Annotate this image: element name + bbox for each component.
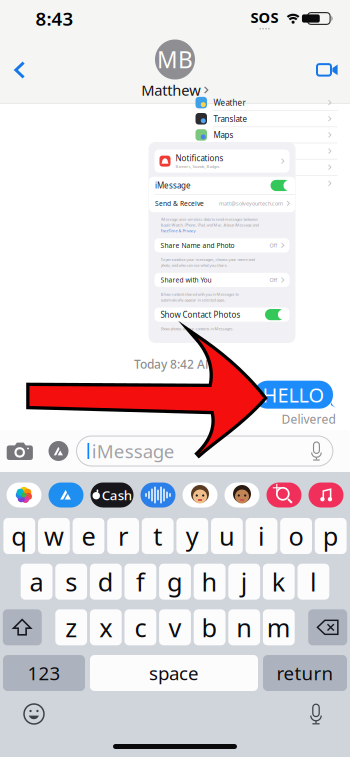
staticText: 123 [27,661,60,685]
button[interactable]: d [90,564,122,600]
button[interactable]: e [73,518,104,554]
staticText: To personalize your messages, choose you… [160,257,254,262]
staticText: iMessage [92,439,175,463]
button[interactable]: u [211,518,243,554]
staticText: return [276,661,333,685]
staticText: j [241,565,248,598]
button[interactable]: m [263,609,295,645]
button[interactable]: w [38,518,70,554]
button[interactable]: space [90,655,258,691]
staticText: g [167,565,183,598]
staticText: matt@solveyourtech.com [219,200,283,207]
button[interactable]: p [315,518,347,554]
button[interactable]: b [194,609,225,645]
staticText: s [65,565,77,598]
button[interactable]: t [142,518,174,554]
button[interactable]: FaceTime video call [304,37,350,103]
staticText: r [118,519,128,553]
button[interactable]: i [246,518,277,554]
staticText: Today 8:42 AM [134,356,216,372]
staticText: iMessage uses wireless data to send mess… [160,216,257,222]
button[interactable]: return [263,655,347,691]
button[interactable]: Camera [0,429,40,473]
button[interactable]: Numbers [3,655,85,691]
button[interactable]: a [21,564,52,600]
staticText: Share Name and Photo [160,241,234,250]
button[interactable]: f [124,564,156,600]
staticText: q [11,519,27,553]
staticText: automatically appear in selected apps. [160,297,225,302]
staticText: k [272,565,286,598]
staticText: x [99,610,112,644]
staticText: Off [269,242,277,249]
staticText: Show Contact Photos [160,309,240,320]
staticText: Maps [213,130,233,140]
button[interactable]: Apple Cash [90,482,133,507]
button[interactable]: c [124,609,156,645]
button[interactable]: o [280,518,312,554]
button[interactable]: Memoji [182,482,217,507]
button[interactable]: Stickers [266,482,301,507]
staticText: FaceTime & Privacy [160,228,195,233]
staticText: Send & Receive [155,199,204,208]
staticText: Translate [213,113,247,124]
staticText: o [289,519,304,553]
button[interactable]: y [176,518,208,554]
button[interactable]: iMessage apps [40,429,76,473]
button[interactable]: iMessage [76,436,350,466]
button[interactable]: n [228,609,260,645]
staticText: MB [157,44,193,74]
button[interactable]: s [55,564,87,600]
button[interactable]: z [55,609,87,645]
button[interactable]: Back [0,37,39,103]
button[interactable]: Memoji 2 [224,482,259,507]
button[interactable]: MB [141,37,209,103]
button[interactable]: v [159,609,191,645]
staticText: Shared with You [160,276,211,284]
staticText: e [81,519,95,553]
button[interactable]: h [194,564,225,600]
staticText: v [168,610,181,644]
staticText: c [134,610,146,644]
staticText: Weather [213,97,245,108]
staticText: Delivered [281,411,335,427]
button[interactable]: l [297,564,329,600]
staticText: SOS [251,7,279,27]
staticText: iMessage [155,180,191,191]
staticText: Notifications [175,153,223,164]
button[interactable]: q [3,518,35,554]
button[interactable]: Audio message [140,482,175,507]
staticText: 8:43 [35,6,73,31]
button[interactable]: Photos [6,482,41,507]
staticText: Off [269,276,277,283]
staticText: n [236,610,252,644]
staticText: f [136,565,145,598]
staticText: Cash [102,486,132,504]
staticText: photo, and who can see what you share. [160,263,227,268]
staticText: w [44,519,64,553]
staticText: h [202,565,218,598]
staticText: y [186,519,199,553]
button[interactable]: k [263,564,295,600]
staticText: d [98,565,114,598]
button[interactable]: Music [308,482,343,507]
staticText: t [153,519,162,553]
staticText: u [219,519,235,553]
button[interactable]: x [90,609,122,645]
staticText: m [267,610,291,644]
staticText: b [202,610,218,644]
button[interactable]: r [107,518,139,554]
staticText: l [310,565,317,598]
staticText: Allow content shared with you in Message… [160,291,238,297]
button[interactable]: Shift [3,609,42,645]
staticText: p [323,519,339,553]
button[interactable]: Dictation [293,694,338,734]
staticText: i [258,519,265,553]
button[interactable]: g [159,564,191,600]
button[interactable]: Delete [308,609,347,645]
staticText: a [30,565,44,598]
button[interactable]: j [228,564,260,600]
staticText: Matthew [141,80,201,100]
button[interactable]: App Store [48,482,83,507]
button[interactable]: Emoji keyboard [11,694,56,734]
